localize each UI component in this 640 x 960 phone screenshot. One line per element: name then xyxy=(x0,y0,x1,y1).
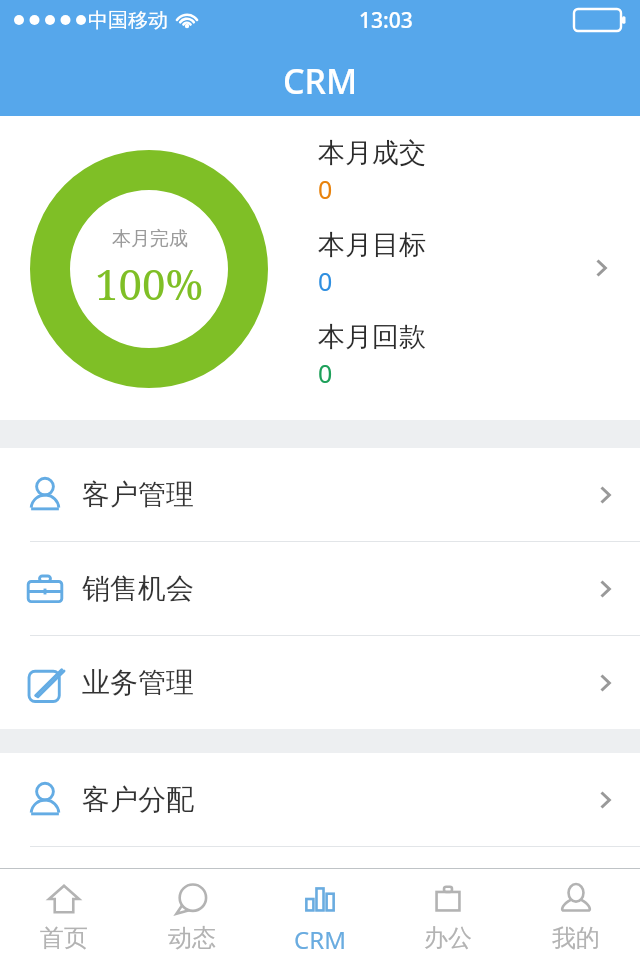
button[interactable]: CRM xyxy=(256,869,384,960)
staticText: 客户分配 xyxy=(82,782,194,817)
staticText: 0 xyxy=(318,356,333,390)
staticText: 首页 xyxy=(40,923,88,953)
staticText: 销售机会 xyxy=(82,571,194,606)
button[interactable]: 我的 xyxy=(512,869,640,960)
staticText: 客户管理 xyxy=(82,477,194,512)
staticText: 业务管理 xyxy=(82,665,194,700)
button[interactable]: 本月完成 xyxy=(0,116,640,420)
button[interactable]: 销售机会 xyxy=(0,542,640,635)
staticText: 0 xyxy=(318,264,333,298)
button[interactable]: 客户分配 xyxy=(0,753,640,846)
staticText: 本月成交 xyxy=(318,136,426,170)
button[interactable]: 动态 xyxy=(128,869,256,960)
button[interactable]: 办公 xyxy=(384,869,512,960)
staticText: 100% xyxy=(95,255,204,312)
staticText: 本月目标 xyxy=(318,228,426,262)
staticText: 办公 xyxy=(424,923,472,953)
button[interactable]: 客户管理 xyxy=(0,448,640,541)
staticText: 0 xyxy=(318,172,333,206)
staticText: 本月回款 xyxy=(318,320,426,354)
staticText: 我的 xyxy=(552,923,600,953)
staticText: 13:03 xyxy=(359,6,413,35)
button[interactable]: 首页 xyxy=(0,869,128,960)
button[interactable] xyxy=(0,847,640,940)
staticText: CRM xyxy=(283,58,358,104)
button[interactable]: 业务管理 xyxy=(0,636,640,729)
staticText: 中国移动 xyxy=(88,8,168,33)
staticText: 动态 xyxy=(168,923,216,953)
staticText: 本月完成 xyxy=(112,227,188,251)
staticText: CRM xyxy=(294,923,346,956)
